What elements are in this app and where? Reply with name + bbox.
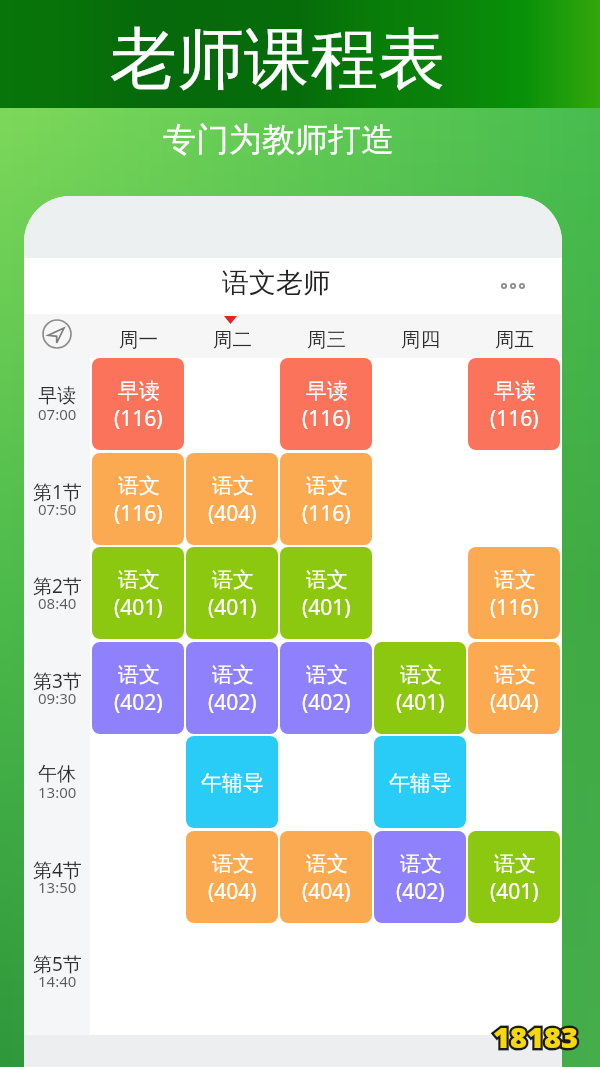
staticText: 09:30	[38, 688, 77, 708]
staticText: 第1节	[33, 479, 82, 505]
staticText: 第4节	[33, 857, 82, 883]
staticText: 语文	[494, 851, 536, 877]
button[interactable]: 语文	[280, 547, 372, 639]
staticText: 第5节	[33, 951, 82, 977]
button[interactable]: 周四	[374, 314, 466, 358]
staticText: 语文	[118, 662, 160, 688]
button[interactable]: 早读	[280, 358, 372, 450]
staticText: 午休	[38, 762, 76, 786]
button[interactable]: 语文	[92, 453, 184, 545]
staticText: 语文	[494, 567, 536, 593]
staticText: 语文	[494, 662, 536, 688]
button[interactable]: 周三	[280, 314, 372, 358]
staticText: 语文	[212, 851, 254, 877]
staticText: 语文	[212, 662, 254, 688]
button[interactable]: 语文	[92, 642, 184, 734]
button[interactable]: 早读	[468, 358, 560, 450]
staticText: (116)	[114, 404, 163, 433]
staticText: (402)	[302, 688, 351, 717]
staticText: 语文	[306, 567, 348, 593]
staticText: 早读	[306, 378, 348, 404]
staticText: 午辅导	[389, 770, 452, 796]
staticText: (401)	[114, 593, 163, 622]
staticText: 周二	[213, 327, 252, 352]
staticText: 18183	[493, 1017, 578, 1056]
staticText: 语文	[118, 473, 160, 499]
staticText: 08:40	[38, 593, 77, 613]
staticText: 语文	[212, 567, 254, 593]
button[interactable]: 语文	[374, 642, 466, 734]
staticText: 语文	[306, 473, 348, 499]
staticText: 老师课程表	[110, 17, 445, 101]
staticText: (116)	[302, 404, 351, 433]
staticText: (116)	[114, 499, 163, 528]
staticText: 第3节	[33, 668, 82, 694]
button[interactable]: 语文	[92, 547, 184, 639]
button[interactable]: 周五	[468, 314, 560, 358]
staticText: (404)	[302, 877, 351, 906]
button[interactable]: 语文	[468, 547, 560, 639]
staticText: 语文	[306, 851, 348, 877]
staticText: 13:50	[38, 877, 77, 897]
staticText: (404)	[208, 877, 257, 906]
staticText: (401)	[396, 688, 445, 717]
button[interactable]: 语文	[186, 831, 278, 923]
staticText: 周三	[307, 327, 346, 352]
button[interactable]: 午辅导	[186, 736, 278, 828]
staticText: 周五	[495, 327, 534, 352]
staticText: (116)	[490, 404, 539, 433]
staticText: (401)	[208, 593, 257, 622]
staticText: 18183	[493, 1017, 578, 1056]
staticText: 07:00	[38, 404, 77, 424]
staticText: 14:40	[38, 971, 77, 991]
button[interactable]: 语文	[186, 453, 278, 545]
staticText: 语文	[400, 851, 442, 877]
staticText: 早读	[494, 378, 536, 404]
button[interactable]: 语文	[468, 642, 560, 734]
button[interactable]: 语文	[186, 547, 278, 639]
button[interactable]: 语文	[280, 642, 372, 734]
button[interactable]: More options	[501, 268, 532, 304]
staticText: (401)	[302, 593, 351, 622]
button[interactable]: 午辅导	[374, 736, 466, 828]
staticText: 早读	[38, 384, 76, 408]
staticText: 07:50	[38, 499, 77, 519]
staticText: 13:00	[38, 782, 77, 802]
staticText: (402)	[208, 688, 257, 717]
staticText: 早读	[118, 378, 160, 404]
button[interactable]: 周二	[186, 314, 278, 358]
staticText: 语文	[306, 662, 348, 688]
staticText: (404)	[490, 688, 539, 717]
staticText: 语文	[400, 662, 442, 688]
staticText: (401)	[490, 877, 539, 906]
staticText: (402)	[396, 877, 445, 906]
staticText: 第2节	[33, 573, 82, 599]
staticText: 周四	[401, 327, 440, 352]
staticText: 午辅导	[201, 770, 264, 796]
button[interactable]: 周一	[92, 314, 184, 358]
staticText: 语文老师	[222, 266, 330, 300]
button[interactable]: 语文	[280, 453, 372, 545]
staticText: 专门为教师打造	[163, 119, 394, 161]
staticText: 语文	[212, 473, 254, 499]
button[interactable]: Locate today	[42, 319, 72, 349]
button[interactable]: 语文	[280, 831, 372, 923]
staticText: 语文	[118, 567, 160, 593]
button[interactable]: 语文	[468, 831, 560, 923]
staticText: (402)	[114, 688, 163, 717]
staticText: (116)	[490, 593, 539, 622]
staticText: 周一	[119, 327, 158, 352]
staticText: (116)	[302, 499, 351, 528]
button[interactable]: 早读	[92, 358, 184, 450]
staticText: (404)	[208, 499, 257, 528]
button[interactable]: 语文	[186, 642, 278, 734]
button[interactable]: 语文	[374, 831, 466, 923]
